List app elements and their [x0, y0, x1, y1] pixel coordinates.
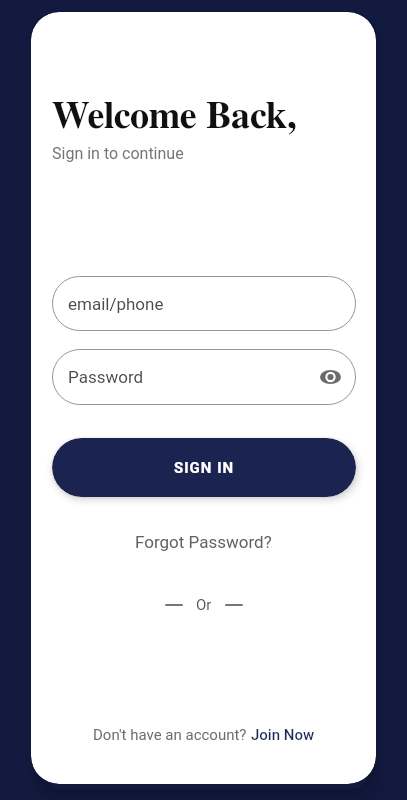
staticText: Sign in to continue — [52, 144, 184, 163]
button[interactable]: Don't have an account? — [93, 726, 315, 744]
staticText: Forgot Password? — [135, 532, 272, 552]
button[interactable] — [318, 365, 342, 389]
staticText: Password — [68, 367, 144, 387]
staticText: Welcome Back, — [52, 98, 297, 136]
staticText: Join Now — [251, 726, 315, 744]
staticText: Or — [196, 596, 212, 614]
button[interactable]: email/phone — [52, 276, 356, 331]
staticText: Don't have an account? — [93, 726, 251, 744]
staticText: email/phone — [68, 294, 164, 314]
button[interactable]: SIGN IN — [52, 438, 356, 497]
button[interactable]: Forgot Password? — [135, 532, 272, 552]
staticText: SIGN IN — [174, 459, 235, 477]
button[interactable]: Password — [52, 349, 356, 405]
